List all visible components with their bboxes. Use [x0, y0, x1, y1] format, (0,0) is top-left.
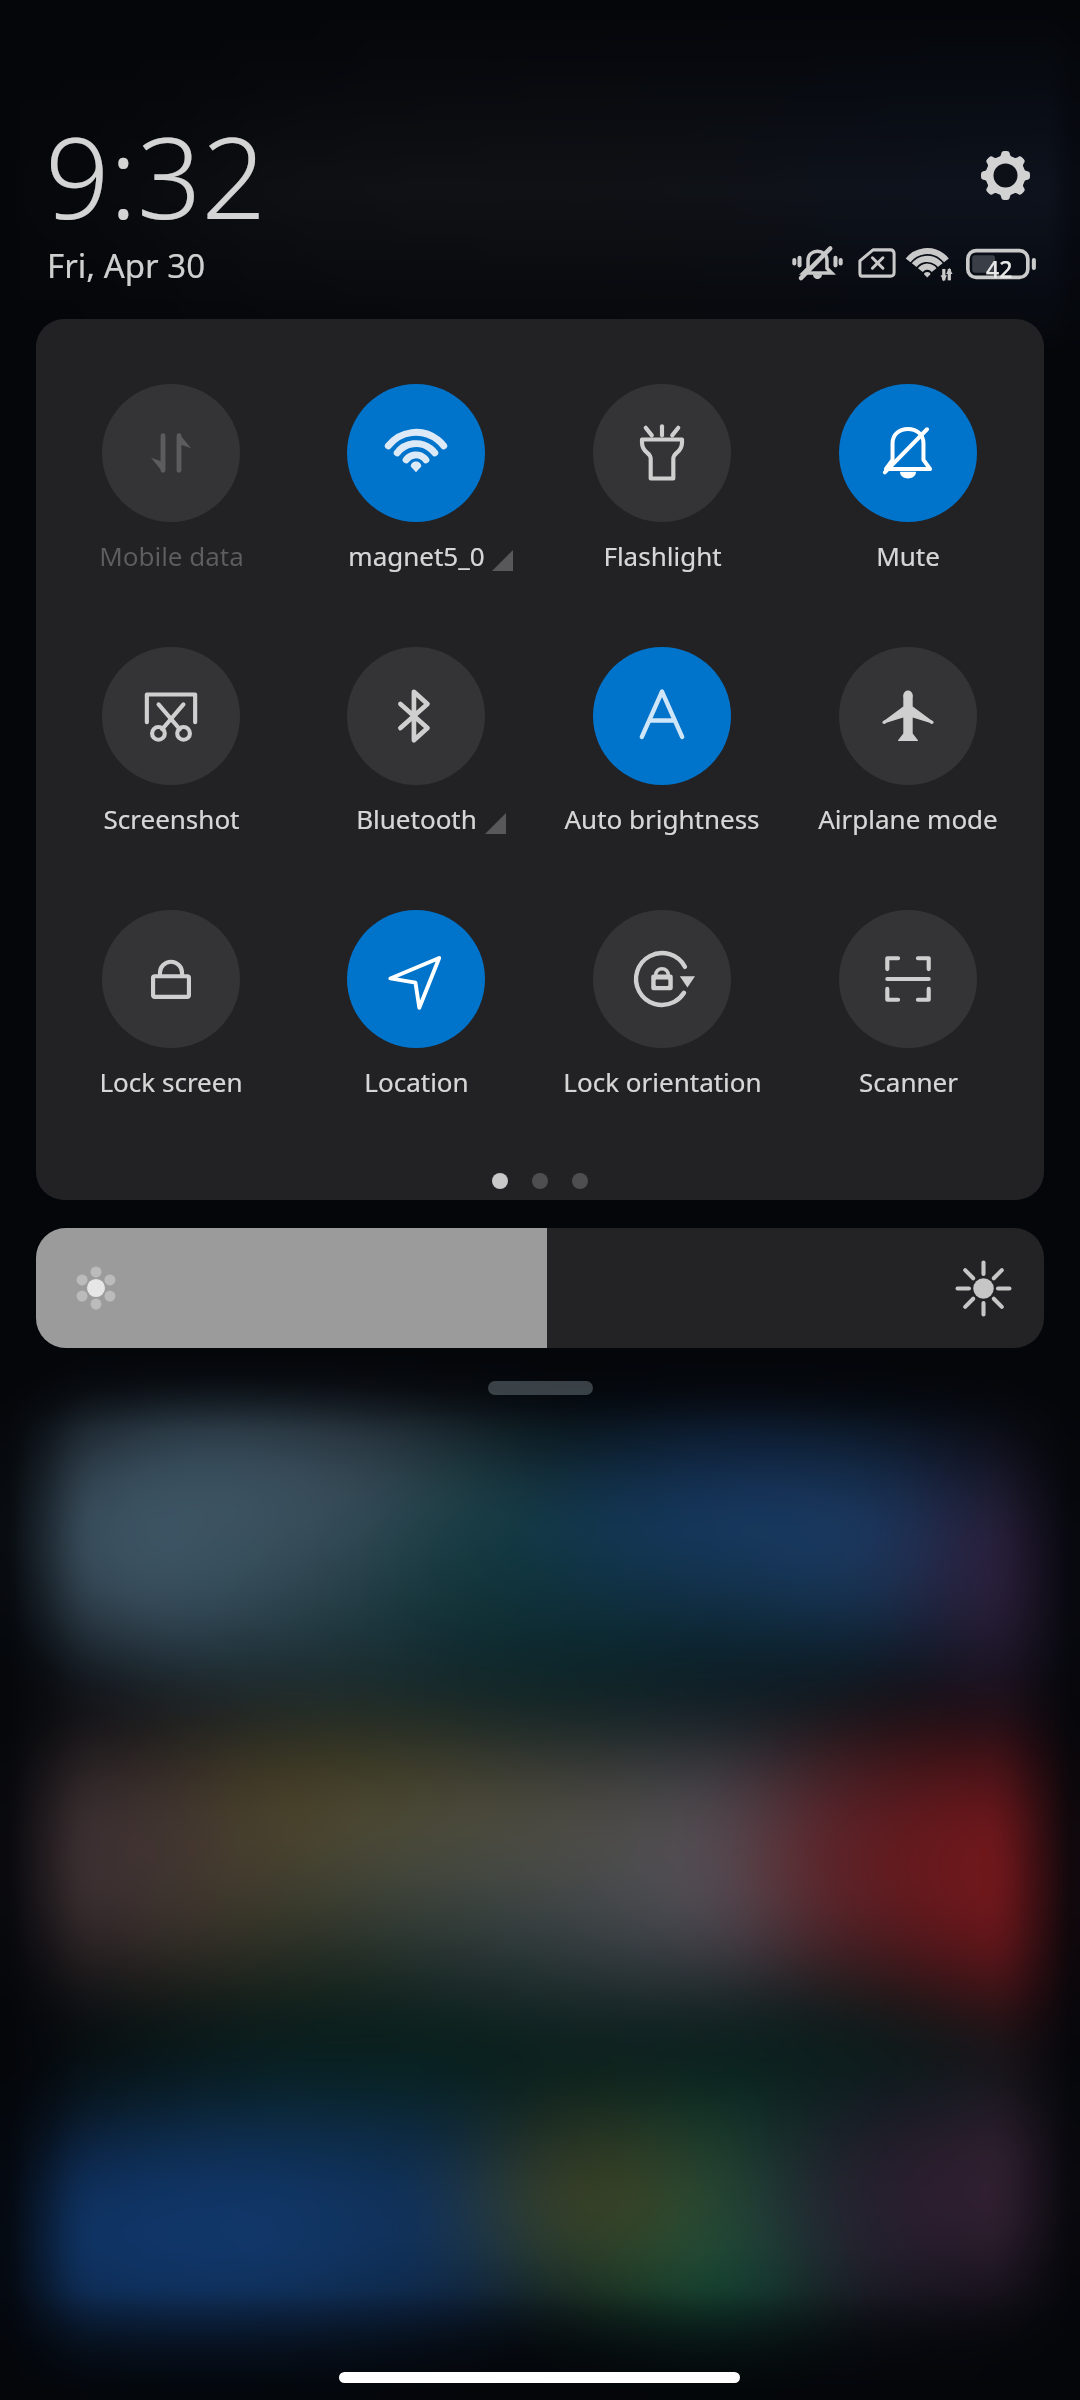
button[interactable]: Auto brightness	[540, 624, 784, 826]
button[interactable]: Expand	[488, 1381, 593, 1395]
staticText: Scanner	[859, 1064, 958, 1099]
button[interactable]: Lock orientation	[540, 887, 784, 1089]
button[interactable]: Location	[294, 887, 538, 1089]
button[interactable]: Lock screen	[49, 887, 293, 1089]
button[interactable]: Mobile data	[49, 361, 293, 563]
button[interactable]: Screenshot	[49, 624, 293, 826]
staticText: Location	[364, 1064, 469, 1099]
staticText: Screenshot	[103, 801, 240, 836]
button[interactable]: magnet5_0	[294, 361, 538, 563]
button[interactable]: Brightness	[36, 1228, 1044, 1348]
button[interactable]: Mute	[786, 361, 1030, 563]
staticText: Airplane mode	[818, 801, 998, 836]
button[interactable]: Airplane mode	[786, 624, 1030, 826]
staticText: 42	[986, 253, 1013, 284]
button[interactable]: Bluetooth	[294, 624, 538, 826]
staticText: Lock screen	[99, 1064, 243, 1099]
staticText: Auto brightness	[564, 801, 760, 836]
staticText: Mobile data	[99, 538, 244, 573]
button[interactable]: Scanner	[786, 887, 1030, 1089]
staticText: Flashlight	[603, 538, 722, 573]
button[interactable]: Flashlight	[540, 361, 784, 563]
staticText: Fri, Apr 30	[47, 243, 206, 288]
staticText: Lock orientation	[563, 1064, 762, 1099]
staticText: Bluetooth	[356, 801, 477, 836]
button[interactable]: Settings	[961, 131, 1049, 219]
staticText: 9:32	[45, 98, 267, 252]
staticText: magnet5_0	[348, 538, 485, 573]
staticText: Mute	[876, 538, 940, 573]
